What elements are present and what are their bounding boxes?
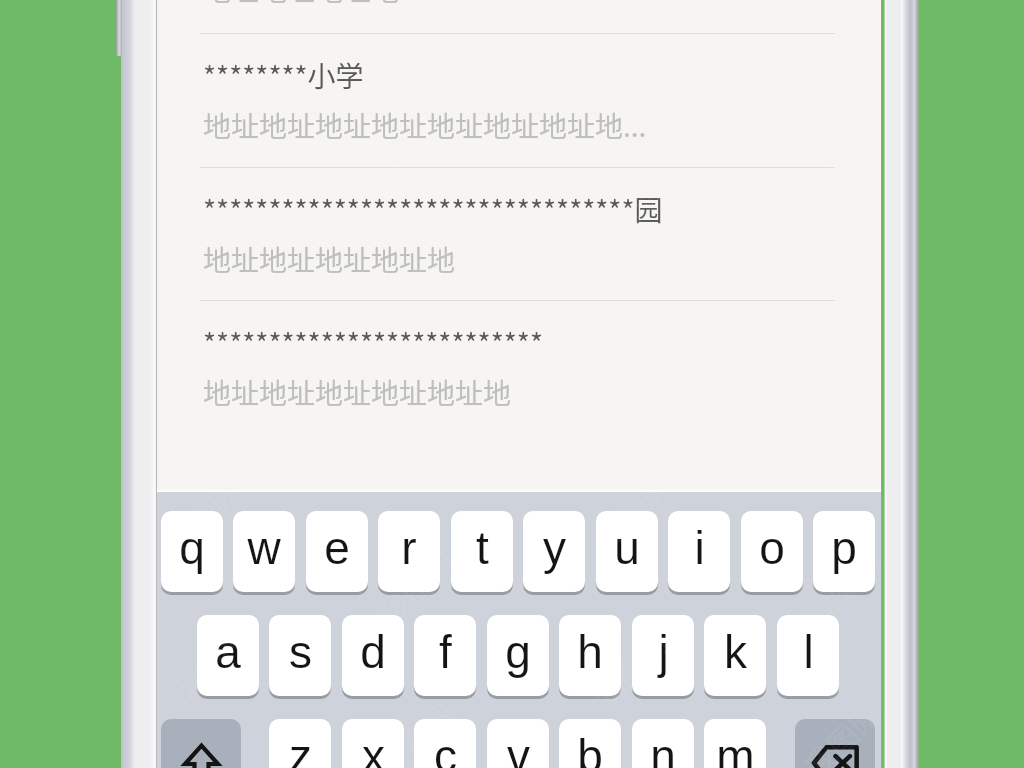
button[interactable]: a bbox=[197, 615, 259, 696]
staticText: 我图网 bbox=[157, 13, 249, 107]
button[interactable]: g bbox=[487, 615, 549, 696]
button[interactable]: w bbox=[233, 511, 295, 592]
staticText: 我图网 bbox=[581, 621, 675, 715]
staticText: q bbox=[179, 522, 205, 573]
button[interactable]: b bbox=[559, 719, 621, 768]
staticText: 我图网 bbox=[794, 83, 883, 177]
staticText: j bbox=[658, 626, 669, 677]
staticText: m bbox=[716, 730, 755, 768]
staticText: b bbox=[577, 730, 603, 768]
staticText: 我图网 bbox=[581, 165, 675, 259]
staticText: u bbox=[614, 522, 640, 573]
button[interactable]: Shift bbox=[161, 719, 241, 768]
staticText: 我图网 bbox=[794, 235, 883, 329]
button[interactable]: o bbox=[741, 511, 803, 592]
staticText: p bbox=[831, 522, 857, 573]
button[interactable]: e bbox=[306, 511, 368, 592]
staticText: 我图网 bbox=[157, 317, 249, 411]
staticText: 我图网 bbox=[368, 235, 462, 329]
staticText: c bbox=[434, 730, 457, 768]
button[interactable]: u bbox=[596, 511, 658, 592]
staticText: i bbox=[694, 522, 705, 573]
staticText: y bbox=[543, 522, 566, 573]
button[interactable]: z bbox=[269, 719, 331, 768]
staticText: 地址地址地址地址地 bbox=[203, 239, 456, 280]
button[interactable]: p bbox=[813, 511, 875, 592]
button[interactable]: Backspace bbox=[795, 719, 875, 768]
staticText: *********************************园 bbox=[203, 189, 663, 230]
button[interactable]: f bbox=[414, 615, 476, 696]
staticText: z bbox=[289, 730, 312, 768]
button[interactable]: j bbox=[632, 615, 694, 696]
staticText: l bbox=[803, 626, 814, 677]
staticText: ********小学 bbox=[203, 55, 364, 96]
staticText: e bbox=[324, 522, 350, 573]
staticText: x bbox=[362, 730, 385, 768]
staticText: ************************** bbox=[203, 322, 543, 363]
staticText: 地址地址地址地 bbox=[203, 0, 400, 10]
staticText: a bbox=[215, 626, 241, 677]
button[interactable]: m bbox=[704, 719, 766, 768]
staticText: 我图网 bbox=[794, 539, 883, 633]
button[interactable]: l bbox=[777, 615, 839, 696]
staticText: v bbox=[507, 730, 530, 768]
button[interactable]: h bbox=[559, 615, 621, 696]
button[interactable]: i bbox=[668, 511, 730, 592]
staticText: 我图网 bbox=[157, 621, 249, 715]
staticText: 我图网 bbox=[368, 387, 462, 481]
staticText: n bbox=[650, 730, 676, 768]
button[interactable]: k bbox=[704, 615, 766, 696]
staticText: w bbox=[247, 522, 281, 573]
button[interactable]: r bbox=[378, 511, 440, 592]
staticText: 我图网 bbox=[368, 539, 462, 633]
staticText: 我图网 bbox=[368, 83, 462, 177]
staticText: s bbox=[289, 626, 312, 677]
staticText: 我图网 bbox=[794, 387, 883, 481]
button[interactable]: n bbox=[632, 719, 694, 768]
button[interactable]: v bbox=[487, 719, 549, 768]
staticText: 我图网 bbox=[794, 691, 883, 768]
staticText: h bbox=[577, 626, 603, 677]
staticText: 地址地址地址地址地址地址地址地... bbox=[203, 105, 647, 146]
button[interactable]: c bbox=[414, 719, 476, 768]
staticText: o bbox=[759, 522, 785, 573]
staticText: 地址地址地址地址地址地 bbox=[203, 372, 512, 413]
button[interactable]: t bbox=[451, 511, 513, 592]
button[interactable]: d bbox=[342, 615, 404, 696]
button[interactable]: x bbox=[342, 719, 404, 768]
staticText: g bbox=[505, 626, 531, 677]
staticText: 我图网 bbox=[368, 691, 462, 768]
staticText: r bbox=[401, 522, 417, 573]
staticText: 我图网 bbox=[157, 469, 249, 563]
staticText: 我图网 bbox=[157, 165, 249, 259]
button[interactable]: s bbox=[269, 615, 331, 696]
button[interactable]: q bbox=[161, 511, 223, 592]
staticText: t bbox=[476, 522, 489, 573]
staticText: f bbox=[439, 626, 452, 677]
staticText: k bbox=[724, 626, 747, 677]
button[interactable]: y bbox=[523, 511, 585, 592]
staticText: d bbox=[360, 626, 386, 677]
staticText: 我图网 bbox=[581, 469, 675, 563]
